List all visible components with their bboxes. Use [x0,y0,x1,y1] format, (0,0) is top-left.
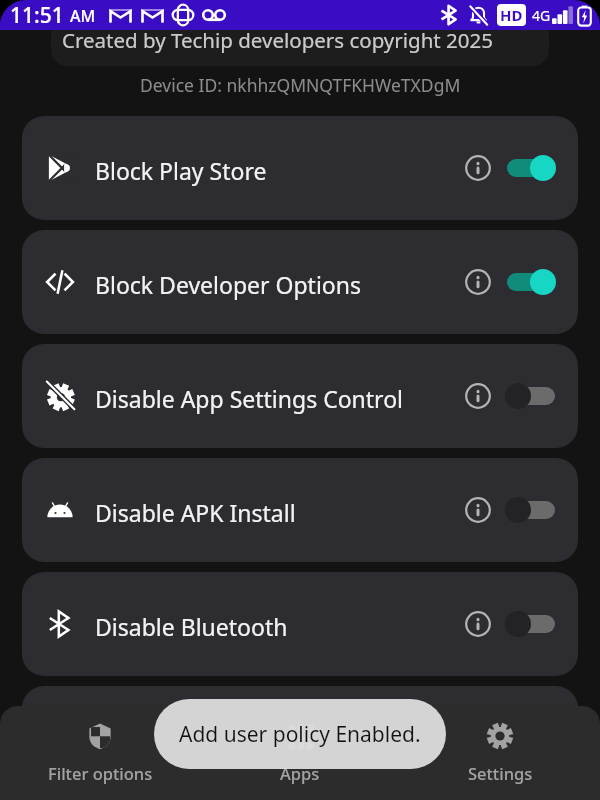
button[interactable]: Disable APK Install [22,458,578,562]
button[interactable]: Block Developer Options [22,230,578,334]
staticText: Disable App Settings Control [95,383,403,414]
button[interactable]: Disable App Settings Control [22,344,578,448]
button[interactable]: Info about Block Developer Options [463,267,493,297]
button[interactable]: Toggle Block Play Store [507,155,555,181]
button[interactable]: Block Play Store [22,116,578,220]
button[interactable]: Toggle Block Developer Options [507,269,555,295]
staticText: Disable Bluetooth [95,611,288,642]
staticText: 4G [532,6,551,25]
button[interactable]: Toggle Disable APK Install [507,497,555,523]
button[interactable]: Toggle Disable Bluetooth [507,611,555,637]
button[interactable]: Apps [200,706,400,800]
button[interactable]: Toggle Disable App Settings Control [507,383,555,409]
staticText: Disable APK Install [95,497,296,528]
button[interactable]: Info about Disable Camera [463,723,493,753]
staticText: Block Developer Options [95,269,361,300]
staticText: Settings [468,762,533,784]
staticText: Filter options [48,762,153,784]
staticText: Device ID: nkhhzQMNQTFKHWeTXDgM [140,73,461,97]
button[interactable]: Info about Disable Bluetooth [463,609,493,639]
staticText: AM [70,5,96,27]
staticText: Block Play Store [95,155,267,186]
button[interactable]: Info about Disable App Settings Control [463,381,493,411]
button[interactable]: Toggle Disable Camera [507,725,555,751]
button[interactable]: Disable Bluetooth [22,572,578,676]
button[interactable]: Info about Block Play Store [463,153,493,183]
staticText: Created by Techip developers copyright 2… [62,26,493,54]
staticText: Apps [280,762,320,784]
button[interactable]: Filter options [0,706,200,800]
button[interactable]: Disable Camera [22,686,578,790]
staticText: HD [500,5,523,25]
staticText: Disable Camera [95,725,265,756]
button[interactable]: Info about Disable APK Install [463,495,493,525]
staticText: 11:51 [10,1,64,30]
staticText: Add user policy Enabled. [179,720,421,749]
button[interactable]: Settings [400,706,600,800]
